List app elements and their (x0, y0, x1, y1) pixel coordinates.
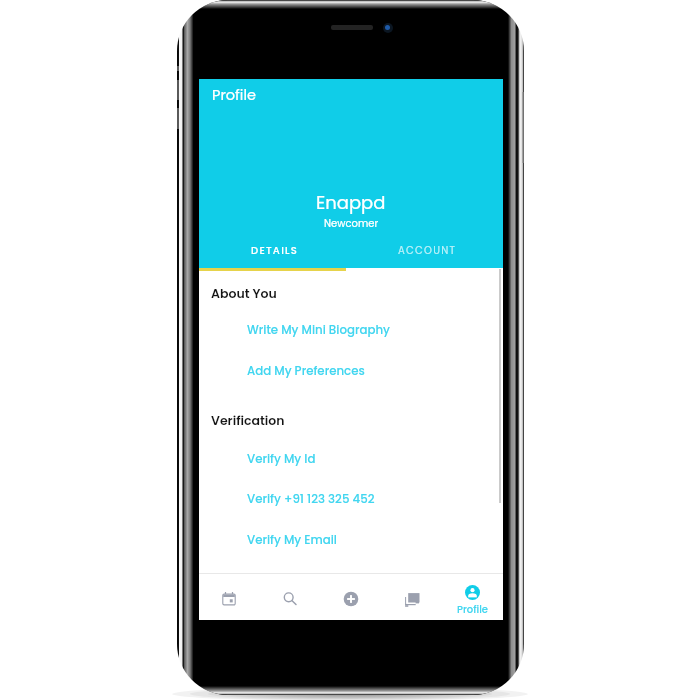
button[interactable]: Write My Mini Biography (199, 319, 503, 341)
staticText: Verify My Email (247, 532, 337, 549)
staticText: DETAILS (251, 243, 299, 257)
staticText: Profile (457, 602, 488, 616)
staticText: Enappd (316, 190, 386, 215)
button[interactable]: ACCOUNT (351, 236, 503, 264)
button[interactable]: Verify My Email (199, 529, 503, 551)
staticText: Verify +91 123 325 452 (247, 491, 375, 508)
staticText: Add My Preferences (247, 363, 365, 380)
staticText: Profile (212, 85, 256, 105)
button[interactable]: Calendar (199, 574, 259, 620)
button[interactable]: Verify +91 123 325 452 (199, 488, 503, 510)
button[interactable]: Verify My Id (199, 448, 503, 470)
staticText: Newcomer (324, 216, 379, 230)
button[interactable]: Profile (442, 574, 503, 620)
button[interactable]: DETAILS (199, 236, 351, 264)
staticText: Write My Mini Biography (247, 322, 390, 339)
staticText: Verification (211, 412, 285, 429)
button[interactable]: Search (259, 574, 320, 620)
button[interactable]: Add (320, 574, 381, 620)
staticText: Verify My Id (247, 451, 316, 468)
staticText: About You (211, 285, 277, 302)
button[interactable]: Add My Preferences (199, 360, 503, 382)
button[interactable]: Messages (381, 574, 442, 620)
staticText: ACCOUNT (398, 243, 457, 257)
